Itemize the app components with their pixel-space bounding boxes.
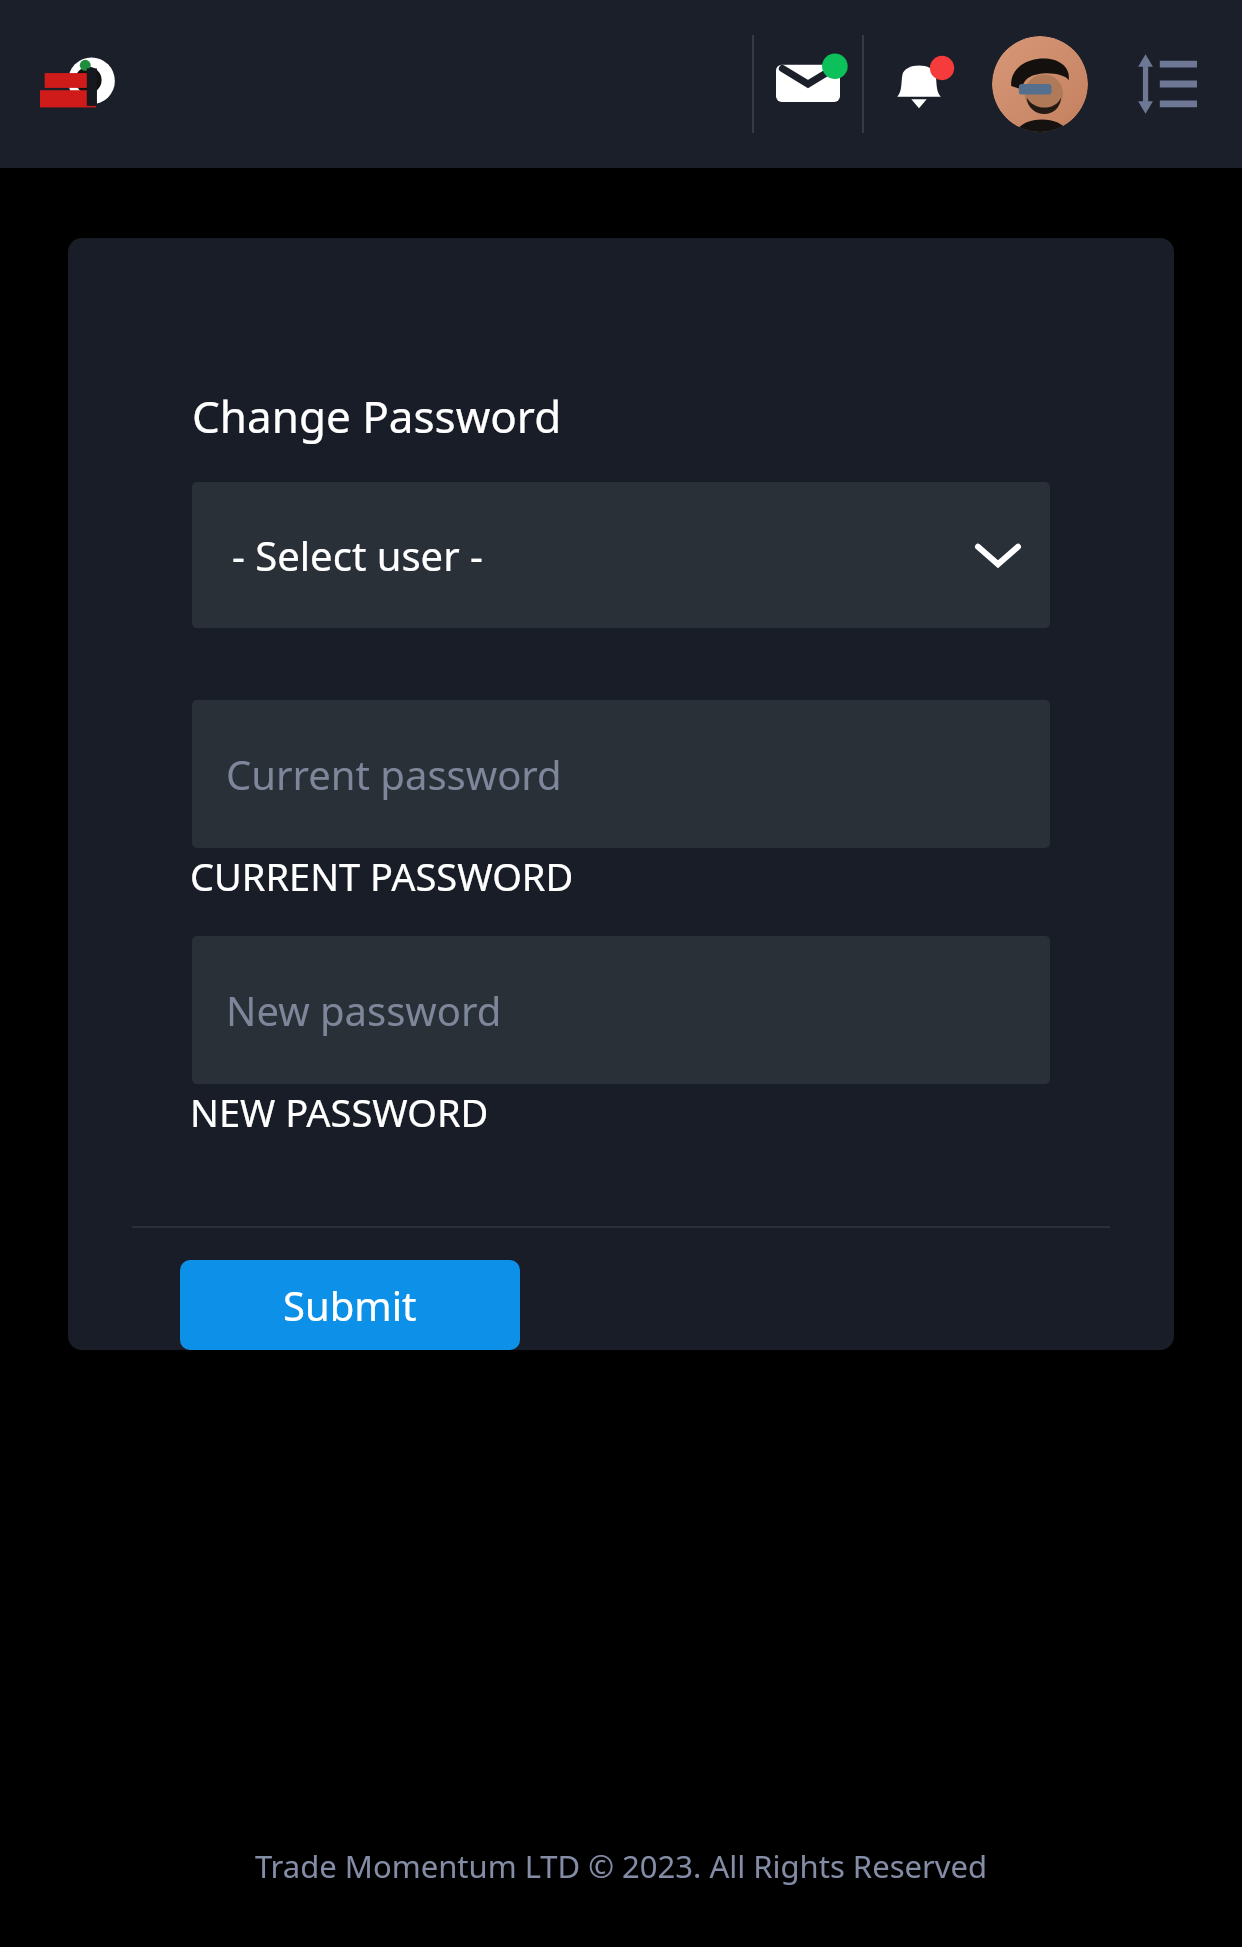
button[interactable]: Notifications	[864, 24, 974, 144]
button[interactable]: Sort	[1128, 46, 1204, 122]
staticText: Change Password	[192, 386, 562, 446]
button[interactable]: Current password	[192, 700, 1050, 848]
button[interactable]: Messages	[754, 24, 862, 144]
button[interactable]: - Select user -	[192, 482, 1050, 628]
staticText: New password	[226, 983, 502, 1037]
staticText: - Select user -	[232, 528, 483, 582]
staticText: Trade Momentum LTD © 2023. All Rights Re…	[0, 1845, 1242, 1887]
button[interactable]: Submit	[180, 1260, 520, 1350]
button[interactable]: Profile	[992, 36, 1088, 132]
staticText: Current password	[226, 747, 562, 801]
staticText: Submit	[283, 1278, 417, 1332]
button[interactable]: Trade Momentum logo	[40, 45, 118, 123]
staticText: NEW PASSWORD	[190, 1086, 489, 1138]
staticText: CURRENT PASSWORD	[190, 850, 574, 902]
button[interactable]: New password	[192, 936, 1050, 1084]
